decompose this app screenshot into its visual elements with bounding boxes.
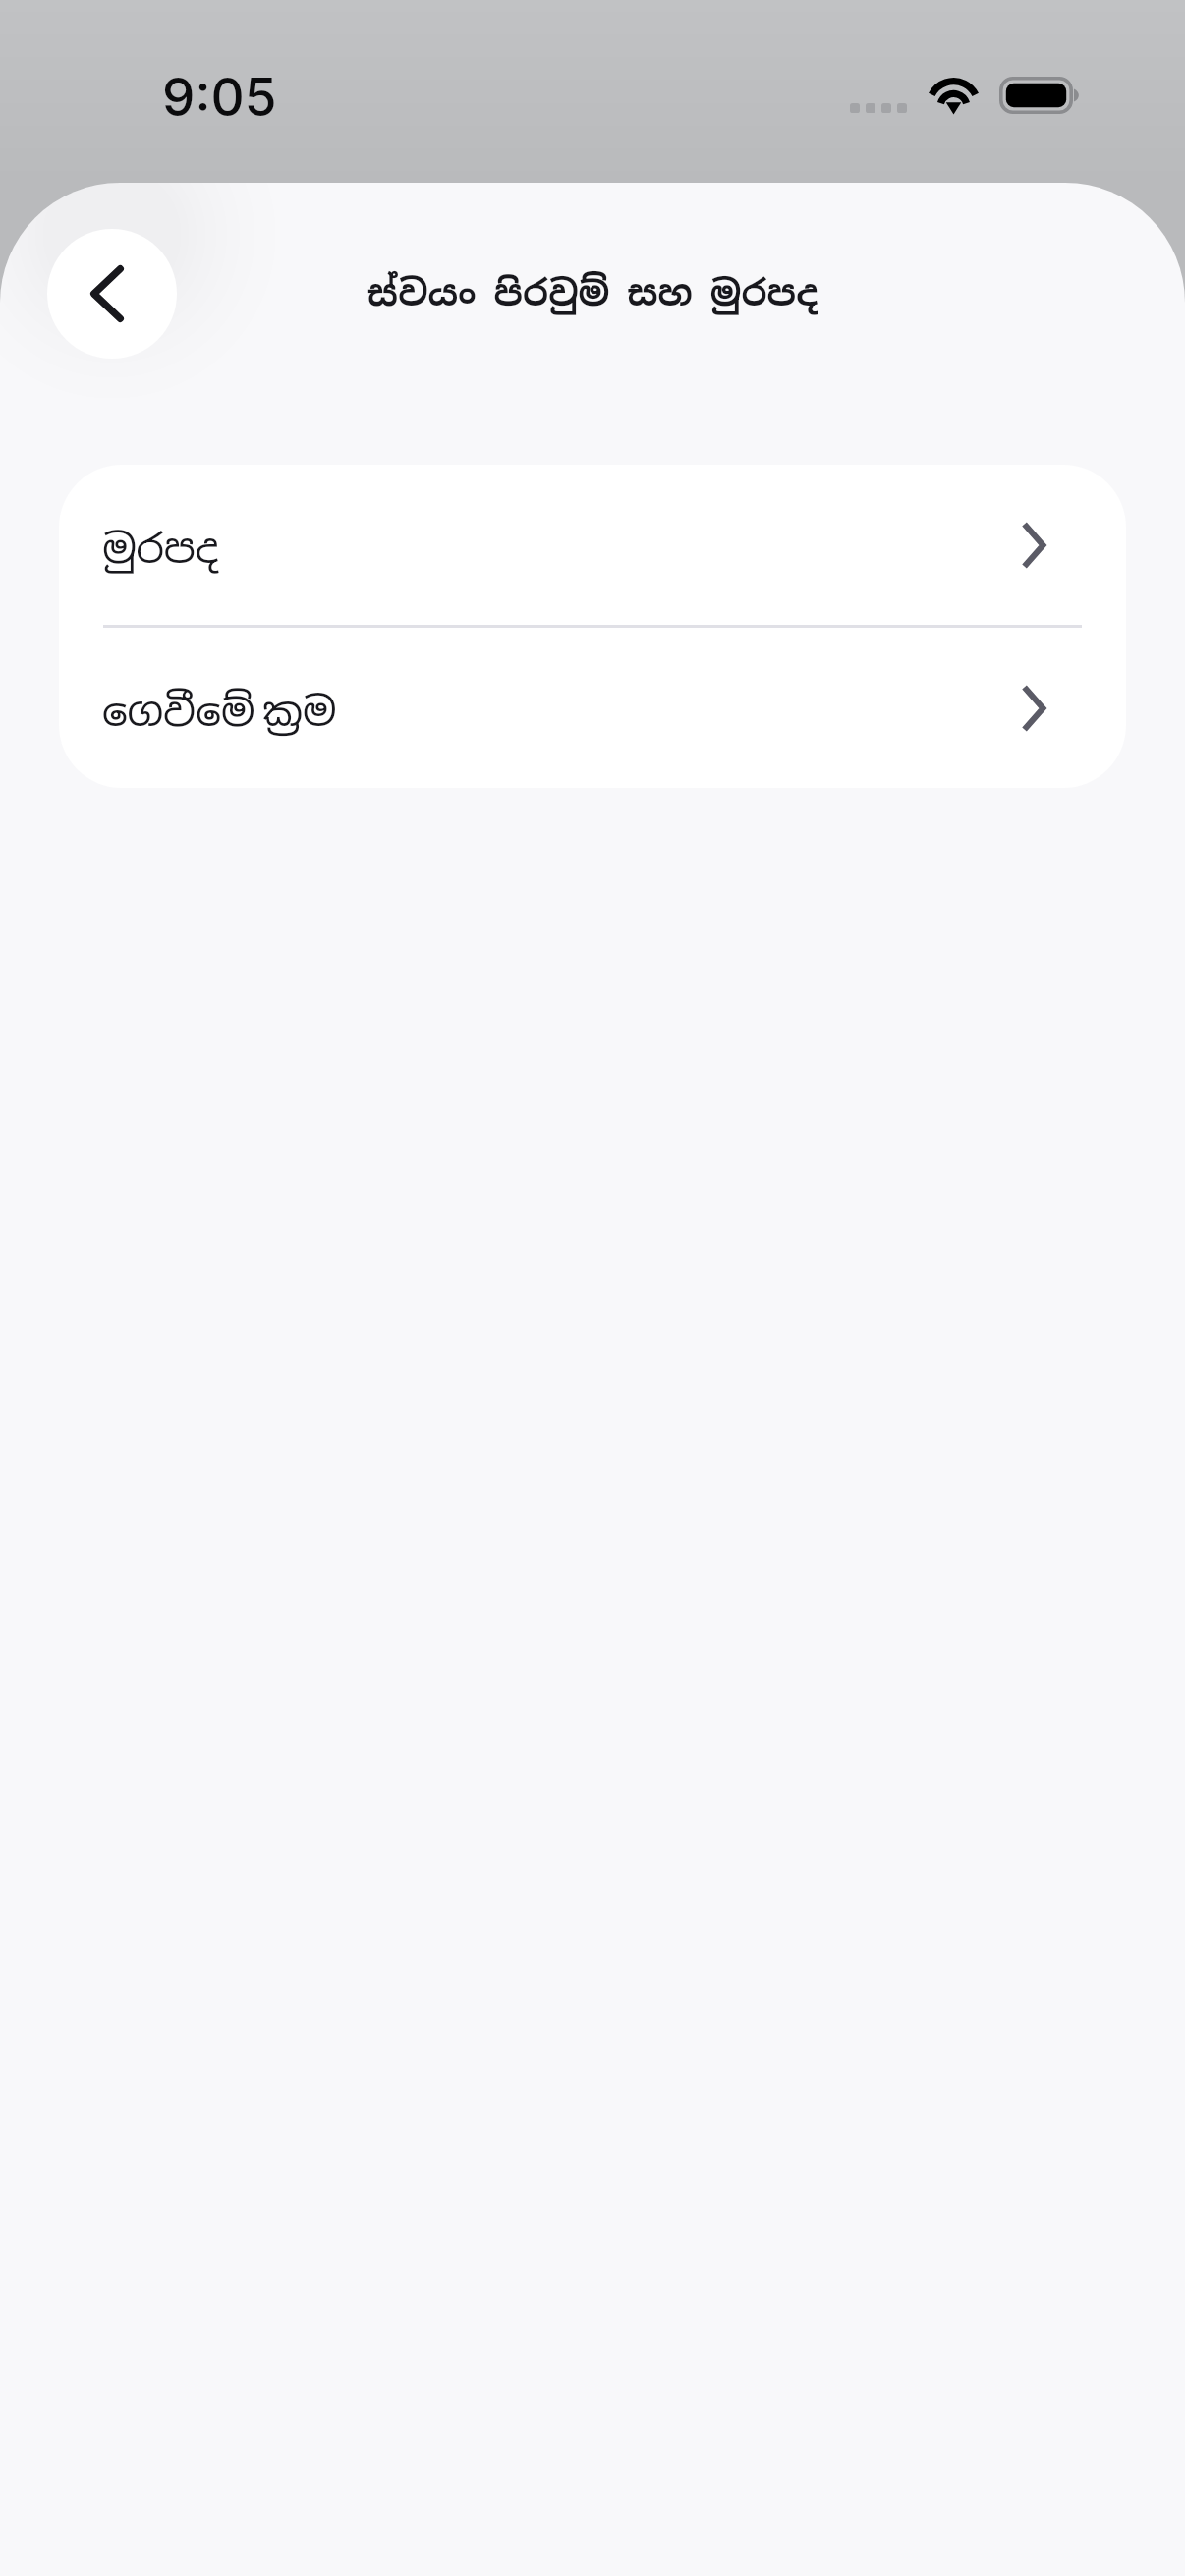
staticText: ගෙවීමේ ක්‍රම <box>102 686 337 738</box>
staticText: මුරපද <box>102 523 219 575</box>
button[interactable]: ගෙවීමේ ක්‍රම <box>59 628 1126 788</box>
staticText: 9:05 <box>162 66 277 129</box>
button[interactable]: Back <box>47 229 177 359</box>
staticText: ස්වයං පිරවුම් සහ මුරපද <box>0 270 1185 316</box>
button[interactable]: මුරපද <box>59 465 1126 625</box>
